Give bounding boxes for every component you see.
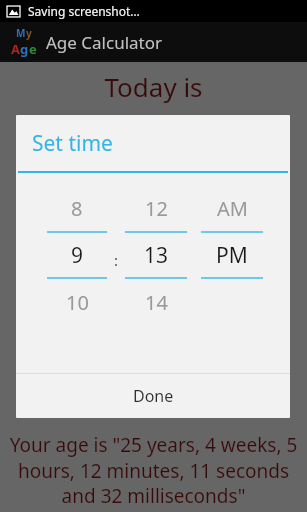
staticText: PM [216,241,248,270]
button[interactable]: PM [200,233,264,277]
staticText: 14 [145,289,168,316]
button[interactable]: Done [16,374,290,418]
staticText: Done [133,385,174,407]
staticText: 13 [144,241,169,270]
button[interactable]: AM [200,185,264,231]
button[interactable]: 14 [124,279,188,325]
staticText: Today is [104,69,203,104]
staticText: : [114,250,119,270]
button[interactable]: 10 [46,279,108,325]
staticText: Saving screenshot… [28,3,140,19]
staticText: AM [217,195,248,222]
staticText: 12 [145,195,168,222]
staticText: Set time [32,129,113,158]
staticText: 8 [71,195,83,222]
button[interactable]: 13 [124,233,188,277]
staticText: e [29,40,37,58]
button[interactable]: 12 [124,185,188,231]
staticText: A [11,40,20,58]
staticText: y [26,26,32,40]
button[interactable]: 9 [46,233,108,277]
staticText: 9 [71,241,84,270]
staticText: 10 [66,289,89,316]
staticText: M [16,26,26,40]
button[interactable]: 8 [46,185,108,231]
staticText: g [20,40,29,58]
staticText: Age Calculator [46,31,163,54]
staticText: Your age is "25 years, 4 weeks, 5 hours,… [6,432,301,508]
